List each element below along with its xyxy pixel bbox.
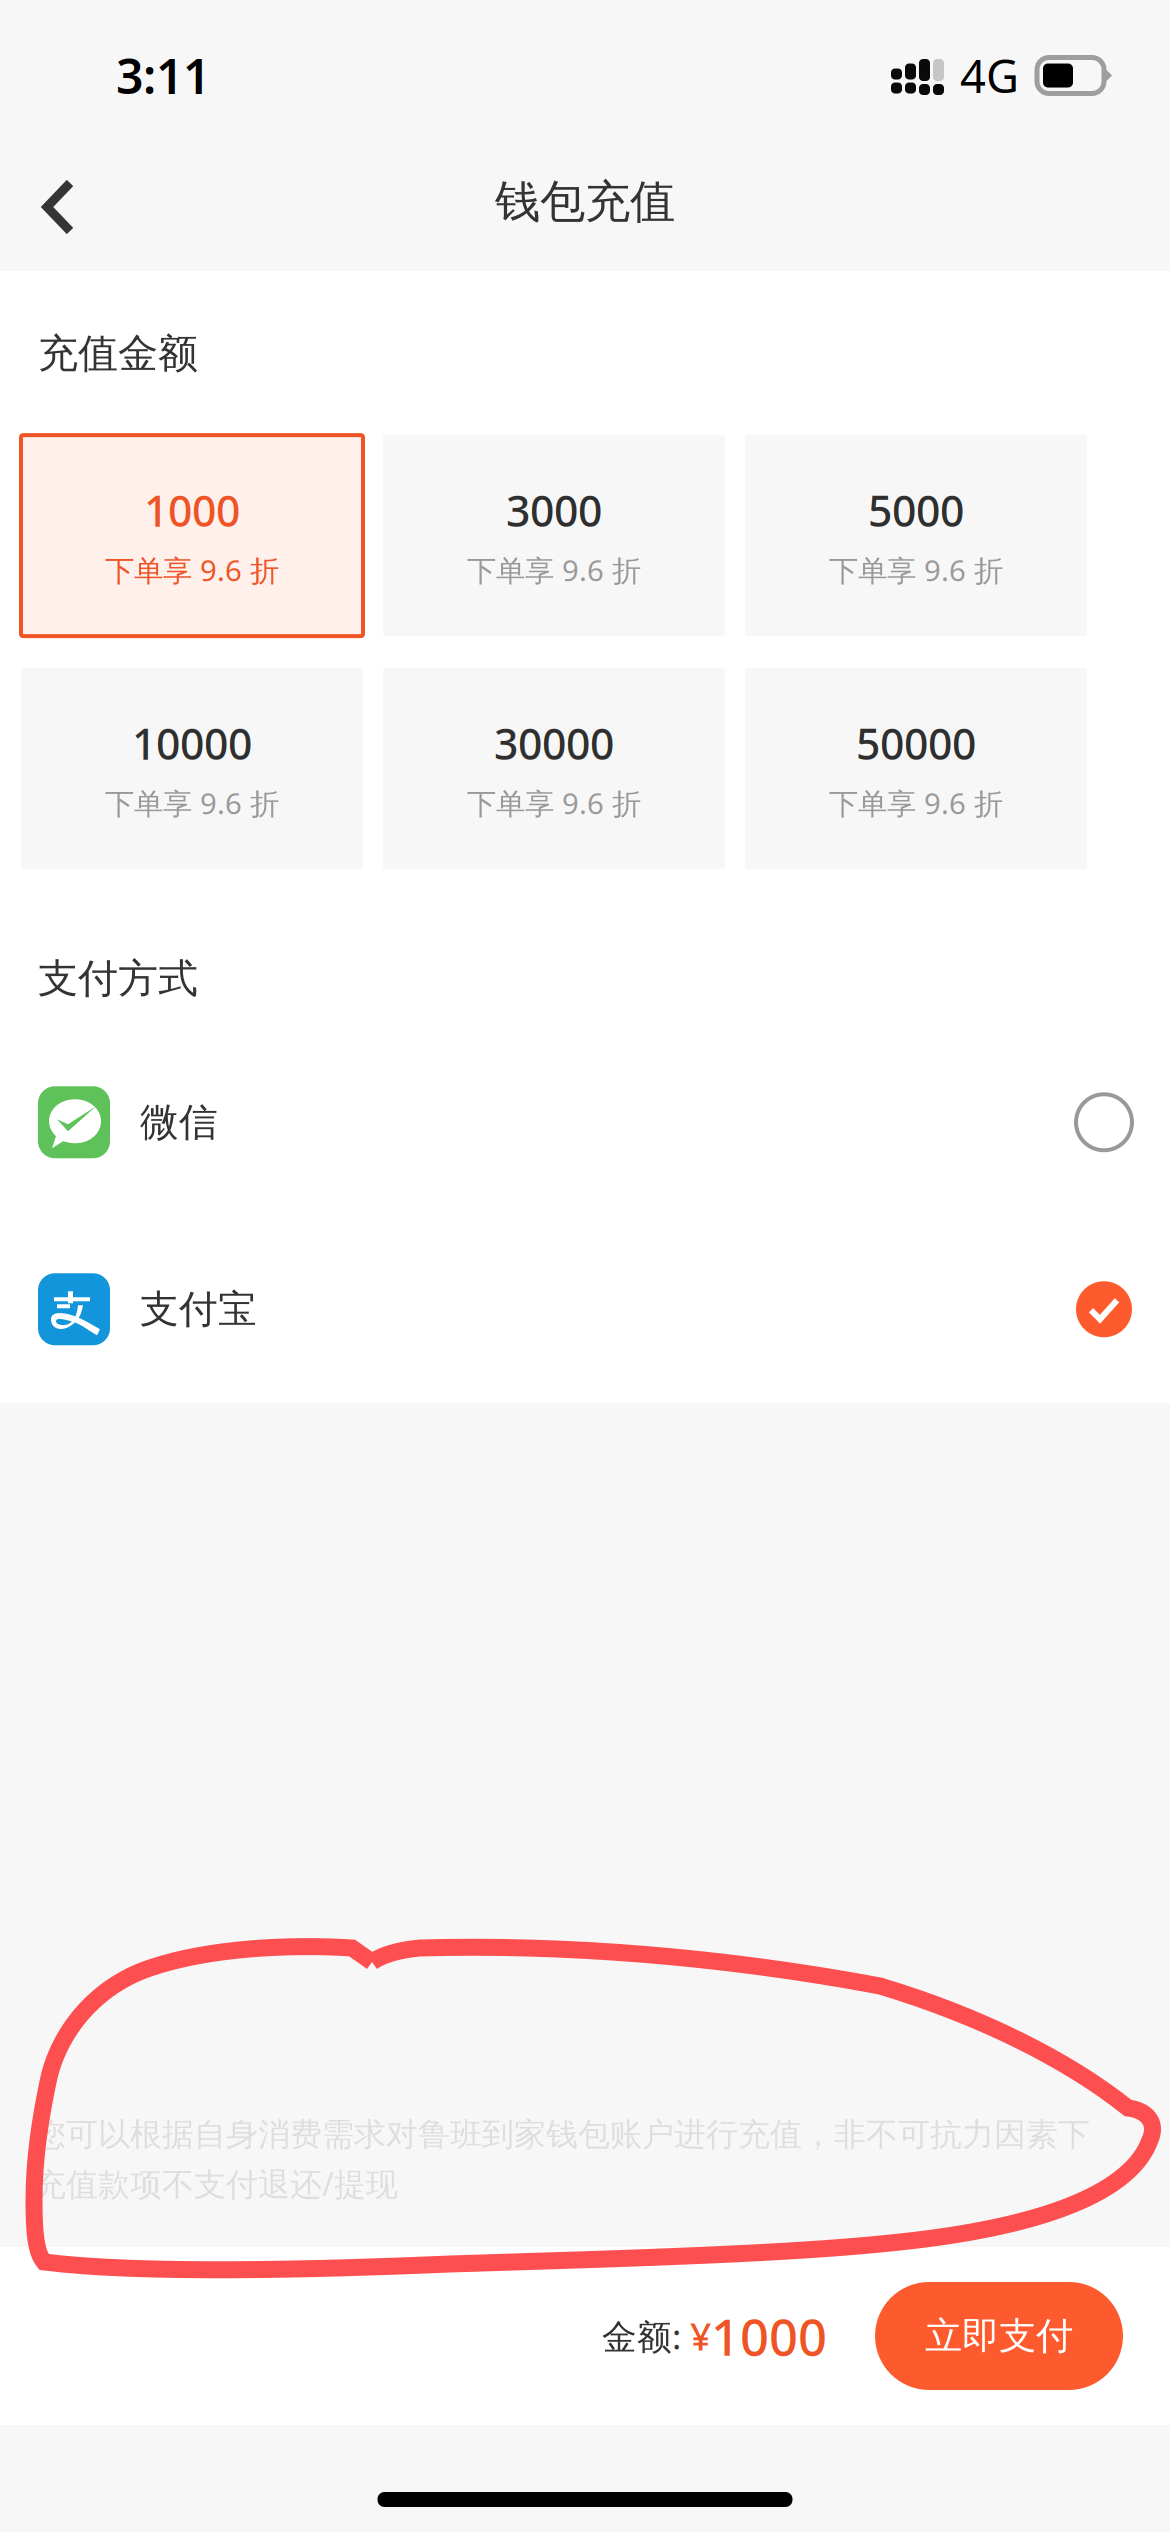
button[interactable]: 5000 xyxy=(745,435,1087,636)
staticText: 3:11 xyxy=(116,44,210,107)
staticText: 10000 xyxy=(132,715,252,771)
staticText: 5000 xyxy=(868,482,964,538)
staticText: 立即支付 xyxy=(925,2313,1073,2359)
staticText: 下单享 9.6 折 xyxy=(105,783,279,822)
staticText: 下单享 9.6 折 xyxy=(467,783,641,822)
staticText: 您可以根据自身消费需求对鲁班到家钱包账户进行充值，非不可抗力因素下 xyxy=(34,2115,1090,2154)
staticText: 充值金额 xyxy=(38,329,198,378)
button[interactable]: 10000 xyxy=(21,668,363,869)
staticText: 1000 xyxy=(144,482,240,538)
staticText: 30000 xyxy=(494,715,614,771)
button[interactable]: 支付宝 xyxy=(0,1249,1170,1369)
button[interactable]: 微信 xyxy=(0,1062,1170,1182)
button[interactable]: 50000 xyxy=(745,668,1087,869)
staticText: 下单享 9.6 折 xyxy=(829,550,1003,589)
button[interactable]: 30000 xyxy=(383,668,725,869)
staticText: 4G xyxy=(960,45,1019,106)
staticText: 1000 xyxy=(711,2302,827,2370)
staticText: 充值款项不支付退还/提现 xyxy=(34,2162,398,2205)
button[interactable]: 1000 xyxy=(21,435,363,636)
staticText: 50000 xyxy=(856,715,976,771)
staticText: 支付方式 xyxy=(38,954,198,1003)
staticText: 微信 xyxy=(140,1098,218,1146)
staticText: 下单享 9.6 折 xyxy=(829,783,1003,822)
button[interactable]: 3000 xyxy=(383,435,725,636)
staticText: 3000 xyxy=(506,482,602,538)
button[interactable]: 立即支付 xyxy=(875,2282,1123,2390)
button[interactable]: Back xyxy=(0,146,104,258)
staticText: 钱包充值 xyxy=(495,174,675,230)
staticText: ¥ xyxy=(690,2311,711,2361)
staticText: 金额: xyxy=(602,2313,681,2359)
staticText: 下单享 9.6 折 xyxy=(467,550,641,589)
staticText: 支付宝 xyxy=(140,1285,257,1333)
staticText: 下单享 9.6 折 xyxy=(105,550,279,589)
